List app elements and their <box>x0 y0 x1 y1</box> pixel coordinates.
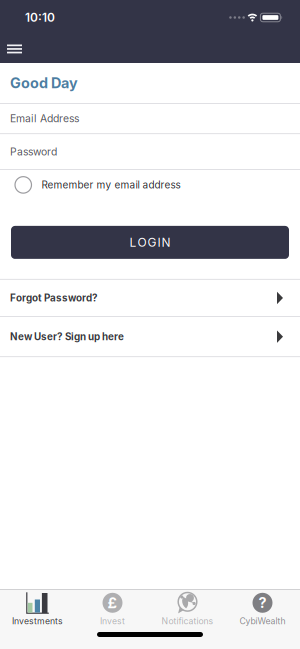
staticText: New User? Sign up here <box>10 331 124 343</box>
staticText: L O G I N <box>129 235 170 250</box>
button[interactable]: Menu <box>0 35 32 63</box>
button[interactable]: Investments <box>0 592 75 626</box>
staticText: £ <box>107 594 117 612</box>
staticText: Email Address <box>10 112 79 125</box>
staticText: Remember my email address <box>41 179 180 191</box>
staticText: Password <box>10 145 57 158</box>
staticText: Investments <box>12 616 63 626</box>
staticText: CybiWealth <box>239 616 285 626</box>
button[interactable]: New User? Sign up here <box>0 317 300 356</box>
button[interactable]: Remember my email address <box>0 170 300 200</box>
staticText: Good Day <box>10 74 78 92</box>
staticText: Forgot Password? <box>10 292 98 304</box>
button[interactable]: CybiWealth <box>225 592 300 626</box>
staticText: Notifications <box>161 616 213 626</box>
button[interactable]: Forgot Password? <box>0 280 300 316</box>
button[interactable]: L O G I N <box>11 226 289 259</box>
staticText: ? <box>258 594 266 611</box>
button[interactable]: Invest <box>75 592 150 626</box>
staticText: Invest <box>100 616 125 626</box>
staticText: 10:10 <box>25 10 55 25</box>
button[interactable]: Notifications <box>150 592 225 626</box>
